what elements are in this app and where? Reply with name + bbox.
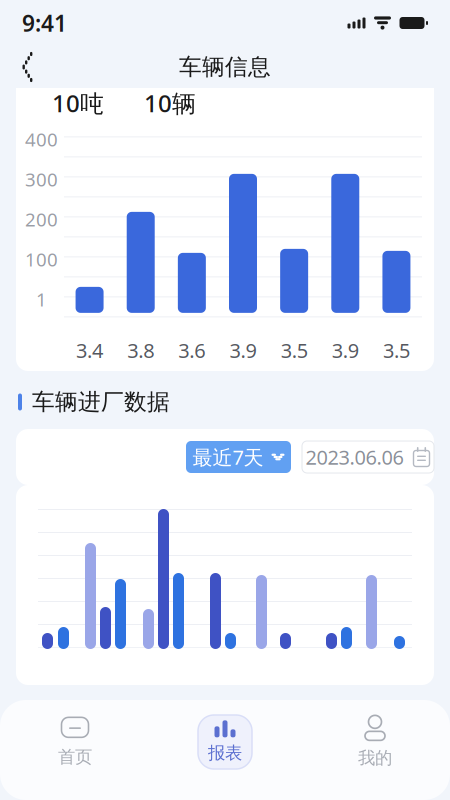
staticText: 最近7天 [192, 444, 263, 470]
button[interactable]: 2023.06.06 [302, 441, 434, 473]
staticText: 3.9 [229, 337, 256, 363]
staticText: 报表 [208, 742, 242, 764]
staticText: 车辆进厂数据 [32, 388, 170, 416]
button[interactable]: 最近7天 [186, 441, 291, 473]
button[interactable]: Back [6, 47, 50, 87]
staticText: 9:41 [22, 8, 67, 38]
staticText: 100 [25, 247, 58, 272]
staticText: 400 [25, 127, 58, 152]
staticText: 3.9 [332, 337, 359, 363]
staticText: 3.6 [178, 337, 205, 363]
staticText: 3.5 [383, 337, 410, 363]
button[interactable]: 报表 [150, 706, 300, 778]
staticText: 3.8 [127, 337, 154, 363]
staticText: 10吨 [52, 87, 104, 119]
staticText: 10辆 [144, 87, 196, 119]
button[interactable]: 我的 [300, 706, 450, 778]
staticText: 1 [36, 287, 47, 312]
button[interactable]: 首页 [0, 706, 150, 778]
staticText: 首页 [58, 746, 92, 768]
staticText: 3.5 [281, 337, 308, 363]
staticText: 2023.06.06 [305, 444, 403, 470]
staticText: 车辆信息 [179, 53, 271, 81]
staticText: 3.4 [76, 337, 103, 363]
staticText: 300 [25, 167, 58, 192]
staticText: 我的 [358, 747, 392, 769]
staticText: 200 [25, 207, 58, 232]
